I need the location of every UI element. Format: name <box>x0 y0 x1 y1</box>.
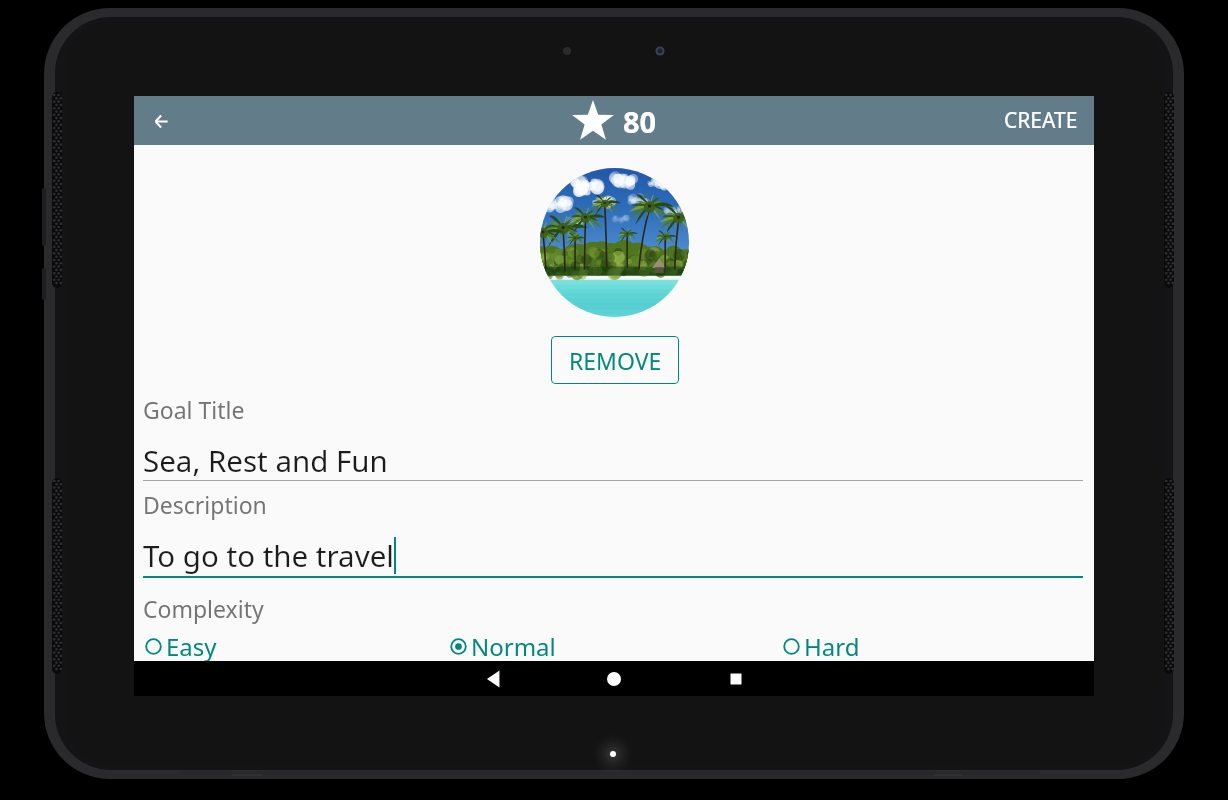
button[interactable]: Back <box>464 661 524 696</box>
button[interactable]: Normal <box>450 630 556 663</box>
button[interactable]: Back <box>143 103 179 139</box>
staticText: Sea, Rest and Fun <box>143 440 388 480</box>
staticText: Hard <box>804 630 860 663</box>
staticText: Easy <box>166 630 217 663</box>
button[interactable]: CREATE <box>988 96 1094 145</box>
button[interactable]: Hard <box>783 630 860 663</box>
staticText: Complexity <box>143 593 264 624</box>
staticText: To go to the travel <box>143 535 394 575</box>
staticText: REMOVE <box>569 345 662 376</box>
staticText: Description <box>143 489 267 520</box>
button[interactable]: Recent apps <box>706 661 766 696</box>
staticText: Goal Title <box>143 394 245 425</box>
staticText: CREATE <box>1004 106 1078 135</box>
button[interactable]: Easy <box>145 630 217 663</box>
button[interactable]: REMOVE <box>551 336 679 384</box>
button[interactable]: Home <box>584 661 644 696</box>
staticText: 80 <box>623 102 657 141</box>
staticText: Normal <box>471 630 556 663</box>
